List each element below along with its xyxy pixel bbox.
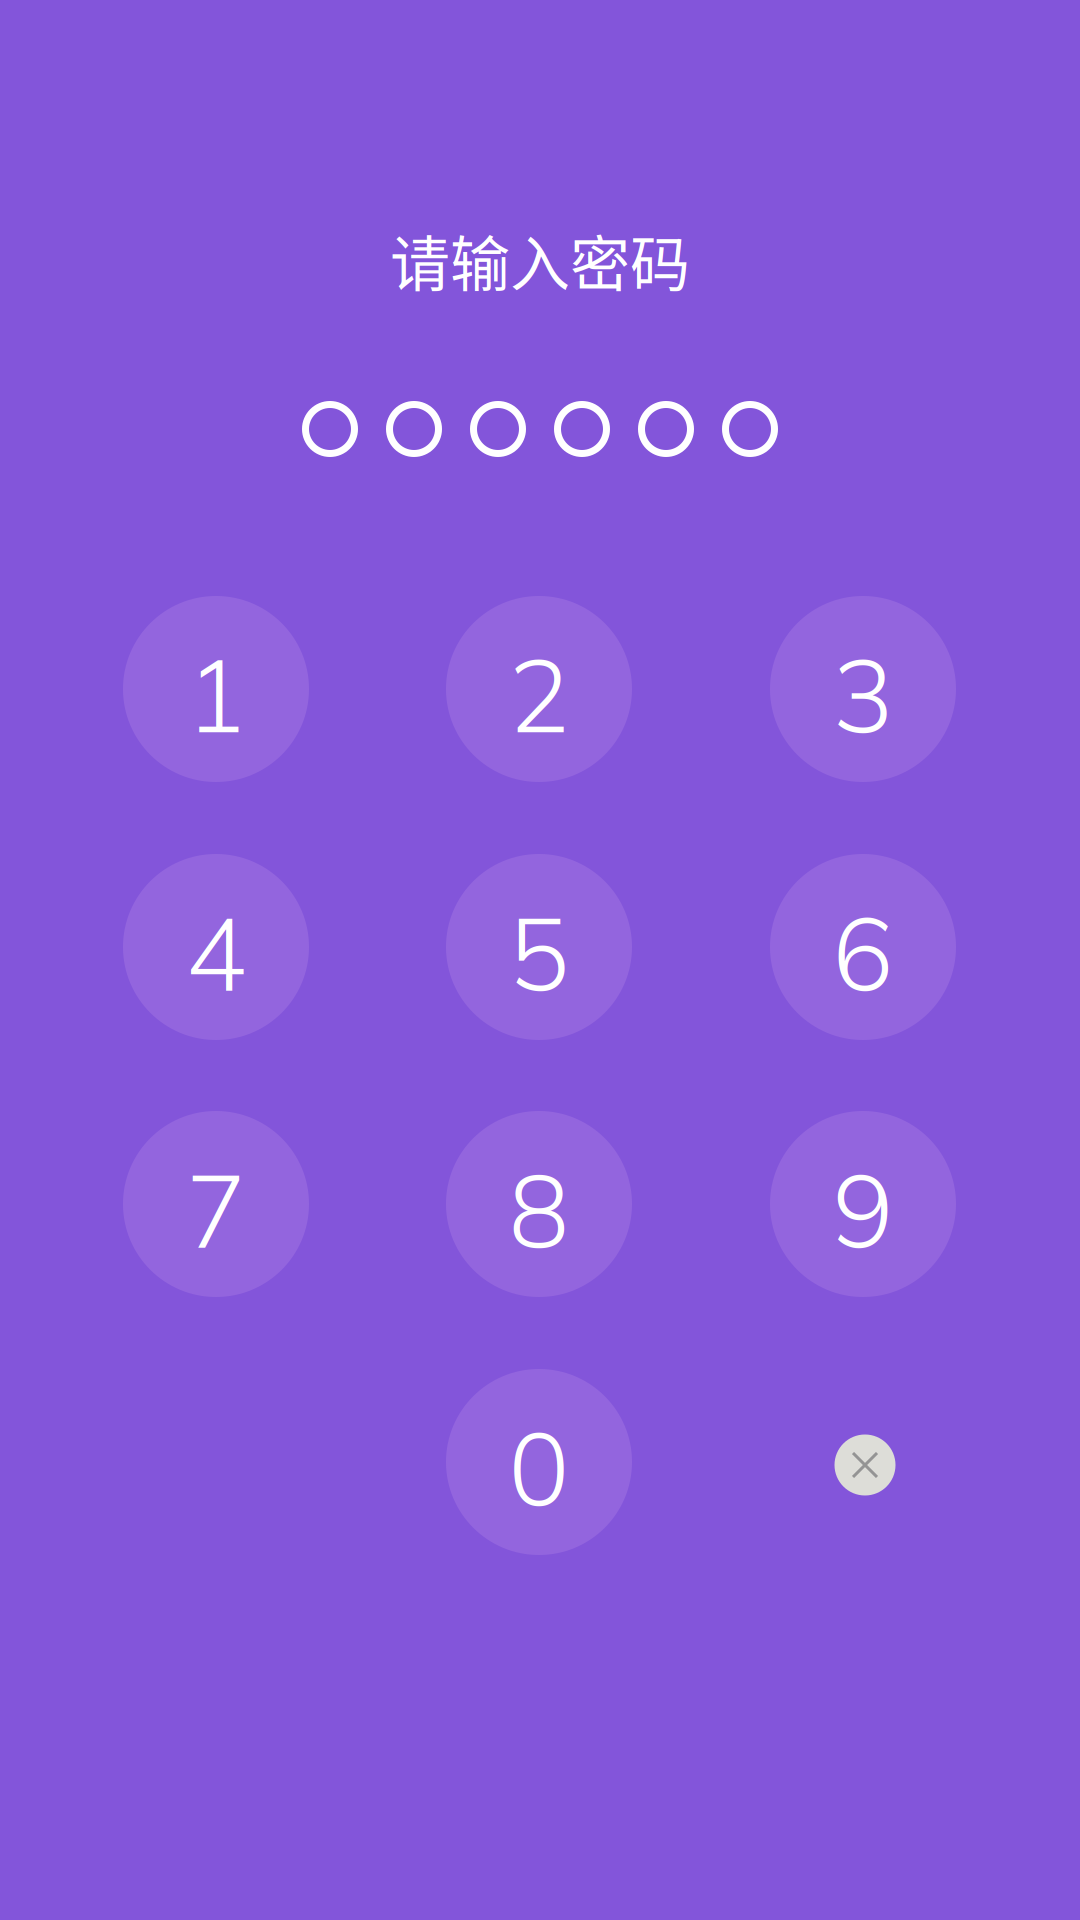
- staticText: 1: [185, 630, 246, 758]
- button[interactable]: 2: [446, 596, 632, 782]
- staticText: 请输入密码: [390, 217, 690, 303]
- staticText: 5: [508, 888, 569, 1016]
- staticText: 8: [508, 1145, 569, 1273]
- button[interactable]: 4: [123, 854, 309, 1040]
- button[interactable]: 3: [770, 596, 956, 782]
- button[interactable]: 8: [446, 1111, 632, 1297]
- button[interactable]: 7: [123, 1111, 309, 1297]
- button[interactable]: 6: [770, 854, 956, 1040]
- staticText: 7: [185, 1145, 246, 1273]
- staticText: 3: [832, 630, 893, 758]
- staticText: 0: [508, 1403, 569, 1531]
- staticText: 2: [508, 630, 569, 758]
- button[interactable]: Delete: [772, 1372, 958, 1558]
- button[interactable]: 1: [123, 596, 309, 782]
- button[interactable]: 5: [446, 854, 632, 1040]
- button[interactable]: 9: [770, 1111, 956, 1297]
- staticText: 6: [832, 888, 893, 1016]
- staticText: 4: [185, 888, 246, 1016]
- button[interactable]: 0: [446, 1369, 632, 1555]
- staticText: 9: [832, 1145, 893, 1273]
